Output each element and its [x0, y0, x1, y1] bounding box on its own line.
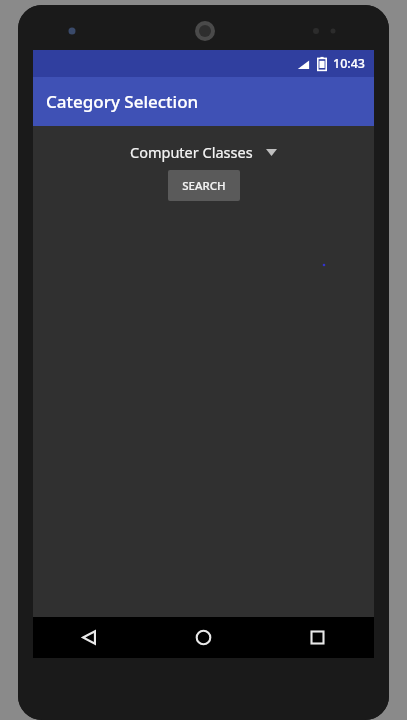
staticText: Category Selection: [46, 90, 199, 113]
button[interactable]: Computer Classes: [124, 139, 283, 165]
button[interactable]: Home: [146, 617, 260, 658]
staticText: Computer Classes: [130, 142, 253, 162]
button[interactable]: Back: [33, 617, 146, 658]
staticText: SEARCH: [182, 178, 226, 194]
button[interactable]: Recent apps: [260, 617, 374, 658]
button[interactable]: SEARCH: [168, 170, 240, 201]
staticText: 10:43: [333, 55, 366, 72]
